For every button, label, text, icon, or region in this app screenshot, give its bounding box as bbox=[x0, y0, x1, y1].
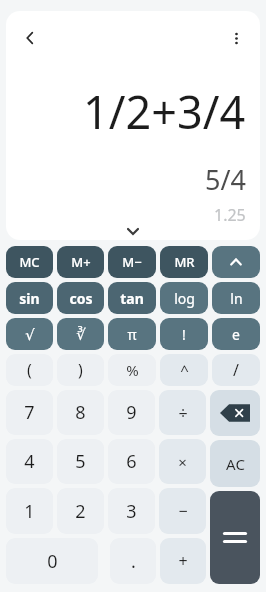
staticText: cos bbox=[69, 289, 93, 308]
staticText: M+ bbox=[71, 253, 91, 271]
staticText: 4 bbox=[24, 449, 35, 474]
staticText: ^ bbox=[180, 360, 189, 380]
button[interactable]: 9 bbox=[108, 390, 155, 435]
staticText: ( bbox=[27, 359, 32, 381]
staticText: e bbox=[232, 325, 240, 344]
staticText: ) bbox=[78, 359, 83, 381]
button[interactable]: ^ bbox=[160, 354, 208, 386]
button[interactable]: 8 bbox=[57, 390, 104, 435]
staticText: 5 bbox=[75, 449, 86, 474]
staticText: 7 bbox=[24, 400, 35, 425]
staticText: sin bbox=[19, 289, 40, 308]
button[interactable]: − bbox=[159, 488, 206, 534]
button[interactable]: Backspace bbox=[210, 390, 260, 436]
staticText: ! bbox=[182, 325, 186, 344]
button[interactable]: M+ bbox=[57, 246, 104, 278]
button[interactable]: log bbox=[160, 282, 208, 314]
button[interactable]: sin bbox=[6, 282, 53, 314]
button[interactable]: Collapse bbox=[212, 246, 260, 278]
button[interactable]: √ bbox=[6, 318, 53, 350]
button[interactable]: + bbox=[160, 538, 206, 584]
staticText: ÷ bbox=[178, 402, 188, 424]
staticText: 6 bbox=[126, 449, 137, 474]
staticText: − bbox=[178, 500, 188, 522]
button[interactable]: MC bbox=[6, 246, 53, 278]
staticText: MR bbox=[174, 253, 195, 271]
staticText: ∛ bbox=[76, 326, 86, 343]
staticText: √ bbox=[25, 326, 35, 343]
button[interactable]: M− bbox=[108, 246, 156, 278]
staticText: 8 bbox=[75, 400, 86, 425]
staticText: + bbox=[178, 550, 188, 572]
button[interactable]: More options bbox=[218, 20, 254, 56]
button[interactable]: ∛ bbox=[57, 318, 104, 350]
staticText: / bbox=[233, 359, 239, 381]
button[interactable]: 2 bbox=[57, 488, 104, 534]
staticText: 1.25 bbox=[214, 204, 246, 226]
button[interactable]: ( bbox=[6, 354, 53, 386]
staticText: 1 bbox=[24, 499, 35, 524]
button[interactable]: ÷ bbox=[159, 390, 206, 435]
staticText: × bbox=[178, 452, 187, 472]
button[interactable]: 7 bbox=[6, 390, 53, 435]
button[interactable]: tan bbox=[108, 282, 156, 314]
button[interactable]: Back bbox=[12, 20, 48, 56]
staticText: 0 bbox=[47, 549, 58, 574]
button[interactable]: cos bbox=[57, 282, 104, 314]
button[interactable]: ln bbox=[212, 282, 260, 314]
staticText: 9 bbox=[126, 400, 137, 425]
button[interactable]: ! bbox=[160, 318, 208, 350]
button[interactable]: 1 bbox=[6, 488, 53, 534]
staticText: 1/2+3/4 bbox=[83, 81, 246, 142]
staticText: MC bbox=[19, 253, 40, 271]
button[interactable]: Expand bbox=[116, 223, 150, 239]
staticText: . bbox=[131, 549, 136, 574]
button[interactable]: AC bbox=[210, 440, 260, 487]
button[interactable]: π bbox=[108, 318, 156, 350]
staticText: % bbox=[126, 360, 139, 380]
button[interactable]: 4 bbox=[6, 439, 53, 484]
button[interactable]: 5 bbox=[57, 439, 104, 484]
button[interactable]: / bbox=[212, 354, 260, 386]
button[interactable]: MR bbox=[160, 246, 208, 278]
button[interactable]: ) bbox=[57, 354, 104, 386]
button[interactable]: 6 bbox=[108, 439, 155, 484]
staticText: 2 bbox=[75, 499, 86, 524]
button[interactable]: 3 bbox=[108, 488, 155, 534]
staticText: M− bbox=[122, 253, 142, 271]
staticText: ln bbox=[230, 289, 243, 308]
button[interactable]: e bbox=[212, 318, 260, 350]
button[interactable]: Equals bbox=[210, 491, 260, 584]
staticText: 5/4 bbox=[205, 161, 246, 198]
staticText: π bbox=[127, 325, 137, 344]
button[interactable]: % bbox=[108, 354, 156, 386]
button[interactable]: 0 bbox=[6, 538, 98, 584]
button[interactable]: . bbox=[110, 538, 156, 584]
staticText: AC bbox=[226, 454, 245, 474]
staticText: 3 bbox=[126, 499, 137, 524]
staticText: log bbox=[174, 289, 195, 308]
staticText: tan bbox=[120, 289, 144, 308]
button[interactable]: × bbox=[159, 439, 206, 484]
